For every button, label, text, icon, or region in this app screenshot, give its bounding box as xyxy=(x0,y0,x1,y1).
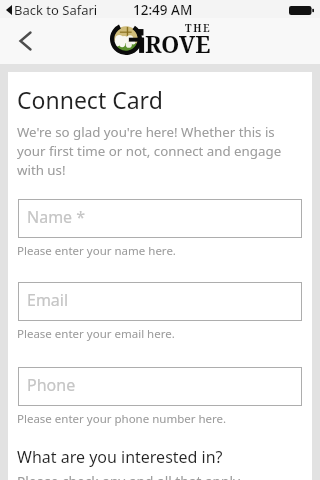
button[interactable]: Name * xyxy=(18,199,302,238)
button[interactable]: Back xyxy=(8,24,42,58)
staticText: Back to Safari xyxy=(14,1,98,19)
staticText: Email xyxy=(27,289,69,311)
button[interactable]: Back to Safari xyxy=(6,1,98,19)
staticText: Connect Card xyxy=(17,84,163,115)
staticText: What are you interested in? xyxy=(17,446,223,468)
staticText: Phone xyxy=(27,374,76,396)
staticText: THE xyxy=(185,21,212,35)
staticText: 12:49 AM xyxy=(133,1,193,19)
button[interactable]: Email xyxy=(18,282,302,321)
staticText: ROVE xyxy=(145,28,211,60)
staticText: Name * xyxy=(27,206,86,228)
staticText: Please check any and all that apply. xyxy=(17,472,244,480)
button[interactable]: Phone xyxy=(18,367,302,406)
staticText: Please enter your phone number here. xyxy=(17,411,227,427)
staticText: Please enter your email here. xyxy=(17,326,175,342)
staticText: Please enter your name here. xyxy=(17,243,176,259)
staticText: We're so glad you're here! Whether this … xyxy=(17,123,303,179)
